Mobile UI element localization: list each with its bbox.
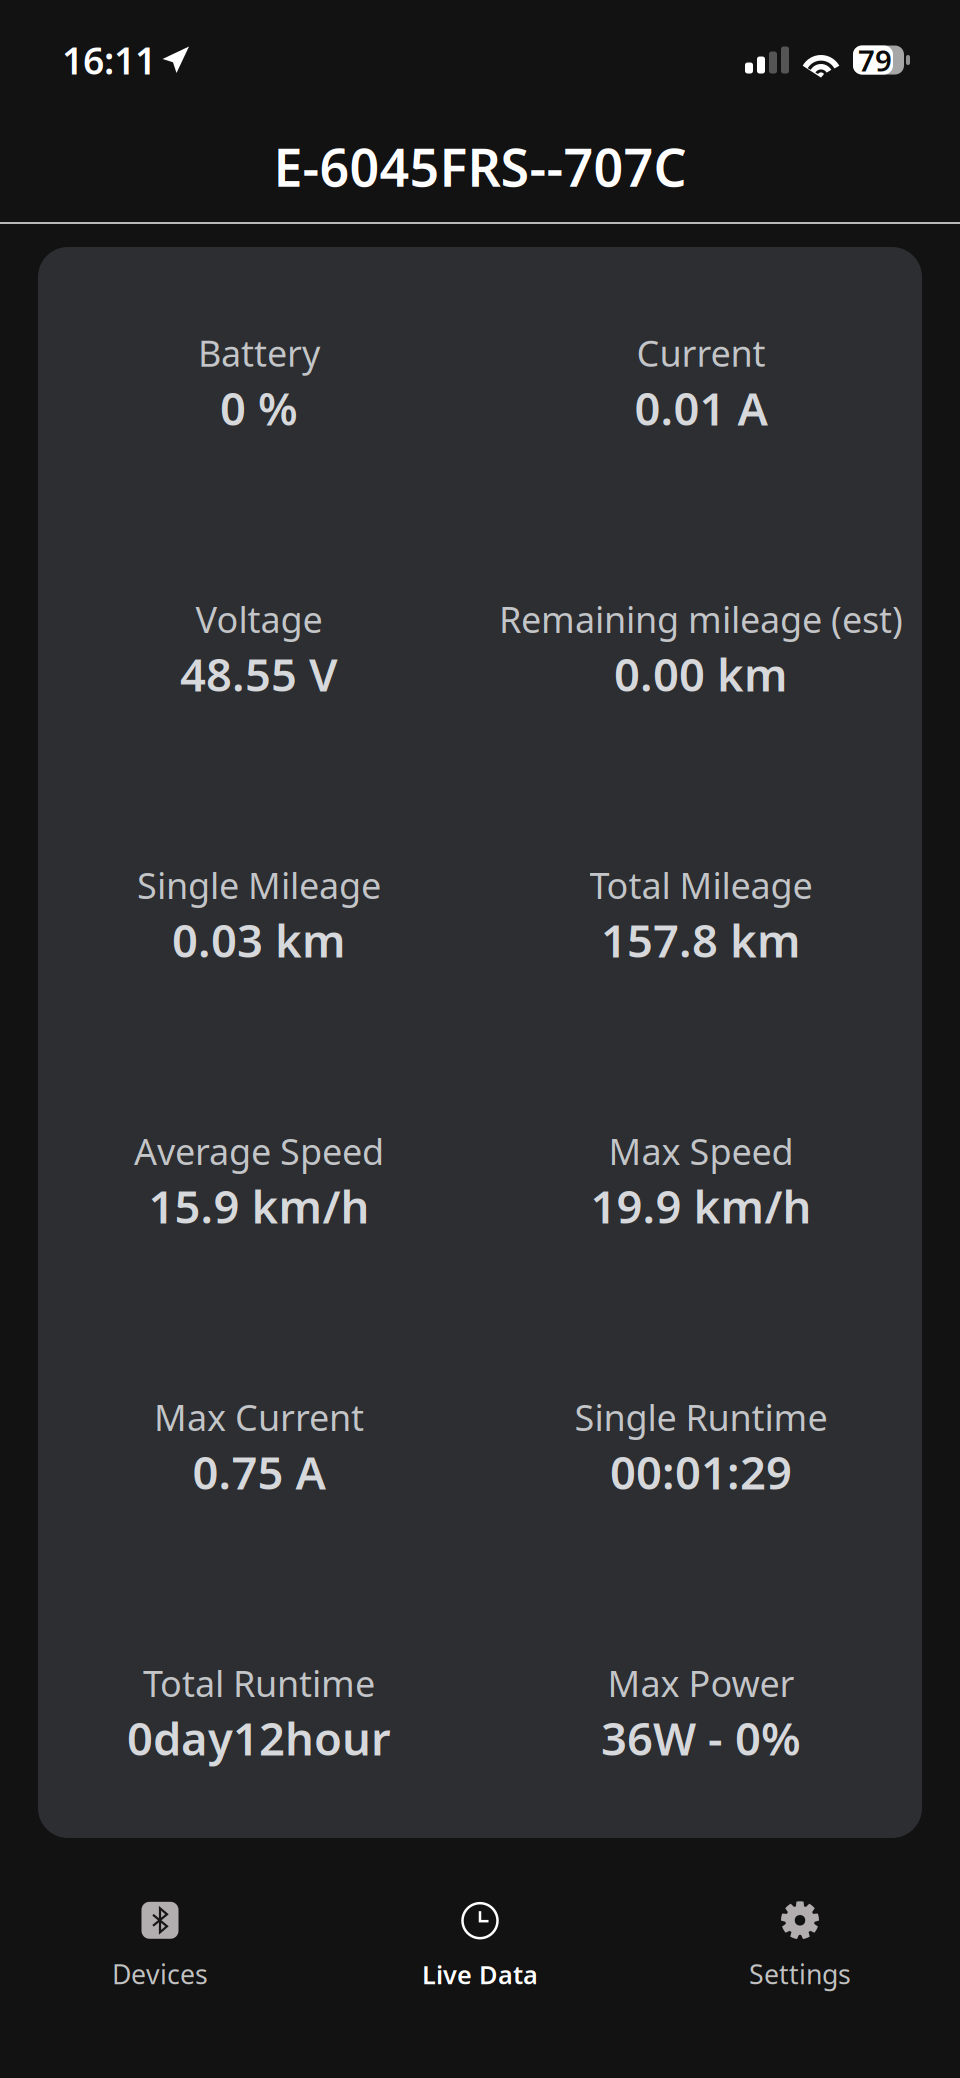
button[interactable]: Devices [0,1886,320,1992]
staticText: Current [636,329,765,377]
staticText: Voltage [195,595,322,643]
staticText: 48.55 V [180,644,338,704]
staticText: 0.01 A [634,378,767,438]
staticText: 79 [858,40,892,79]
staticText: 16:11 [62,35,156,85]
staticText: Max Power [607,1659,794,1707]
staticText: Total Mileage [589,861,812,909]
staticText: Average Speed [134,1127,384,1175]
staticText: Battery [198,329,320,377]
staticText: E-6045FRS--707C [273,132,686,201]
button[interactable]: Live Data [320,1887,640,1991]
staticText: Remaining mileage (est) [499,595,903,643]
staticText: 36W - 0% [601,1708,801,1768]
staticText: 15.9 km/h [148,1176,369,1236]
staticText: Max Current [154,1393,364,1441]
staticText: Single Mileage [137,861,381,909]
staticText: Max Speed [608,1127,793,1175]
staticText: 0.03 km [172,910,346,970]
staticText: 0 % [220,378,298,438]
staticText: 00:01:29 [610,1442,792,1502]
staticText: Single Runtime [574,1393,827,1441]
staticText: Settings [749,1956,851,1992]
staticText: 157.8 km [601,910,801,970]
button[interactable]: Settings [640,1886,960,1992]
staticText: 0day12hour [127,1708,391,1768]
staticText: 19.9 km/h [590,1176,811,1236]
staticText: Total Runtime [143,1659,375,1707]
staticText: 0.00 km [614,644,788,704]
staticText: 0.75 A [192,1442,325,1502]
staticText: Live Data [422,1958,538,1991]
staticText: Devices [112,1956,208,1992]
